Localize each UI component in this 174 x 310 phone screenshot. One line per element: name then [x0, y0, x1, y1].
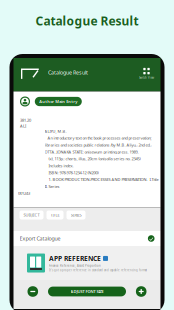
- button[interactable]: App Reference advertisement: [13, 246, 160, 280]
- staticText: An introductory text on the book process…: [44, 135, 151, 141]
- button[interactable]: Switch View: [133, 68, 159, 79]
- staticText: Switch View: [139, 76, 154, 79]
- staticText: Export Catalogue: [19, 235, 60, 242]
- button[interactable]: SUBJECT: [19, 210, 43, 219]
- staticText: Author Main Entry: [39, 99, 77, 104]
- staticText: ISBN: 978-978-1234-12 (N200): [44, 170, 98, 175]
- staticText: SUBJECT: [23, 212, 39, 218]
- button[interactable]: Author Main Entry: [35, 97, 82, 106]
- staticText: 1. BOOK PRODUCTION-PROCESSES AND PRESERV…: [44, 177, 158, 182]
- button[interactable]: ADJUST FONT SIZE: [48, 287, 126, 296]
- staticText: II. Series: [44, 184, 59, 189]
- button[interactable]: Increase font size: [136, 286, 146, 297]
- staticText: 001243: [18, 190, 30, 196]
- staticText: ALIYU, M.B.: [44, 128, 66, 134]
- staticText: ALI: [20, 123, 26, 128]
- button[interactable]: Back: [21, 68, 39, 79]
- button[interactable]: SERIES: [66, 210, 85, 219]
- staticText: 381.20: [20, 117, 31, 123]
- staticText: APP REFERENCE: [49, 254, 101, 263]
- staticText: ADJUST FONT SIZE: [70, 289, 103, 294]
- button[interactable]: Decrease font size: [27, 286, 38, 297]
- button[interactable]: Export Catalogue: [13, 231, 160, 246]
- staticText: TITLE: [50, 212, 59, 218]
- staticText: OTTA, JONAKA STATE: onisewum printing pr…: [44, 149, 138, 154]
- staticText: (x), 113p.: charts, illus, 20cm (onisoll…: [44, 156, 140, 161]
- staticText: SERIES: [70, 212, 81, 218]
- staticText: Catalogue Result: [48, 69, 88, 76]
- button[interactable]: TITLE: [46, 210, 63, 219]
- staticText: Finance Reference, Assist Proportion: [49, 264, 101, 267]
- staticText: It's got a proper reference in standard …: [49, 268, 147, 272]
- staticText: libraries and societies public relations…: [44, 142, 151, 148]
- staticText: Includes index.: [44, 163, 73, 168]
- staticText: Catalogue Result: [35, 13, 138, 29]
